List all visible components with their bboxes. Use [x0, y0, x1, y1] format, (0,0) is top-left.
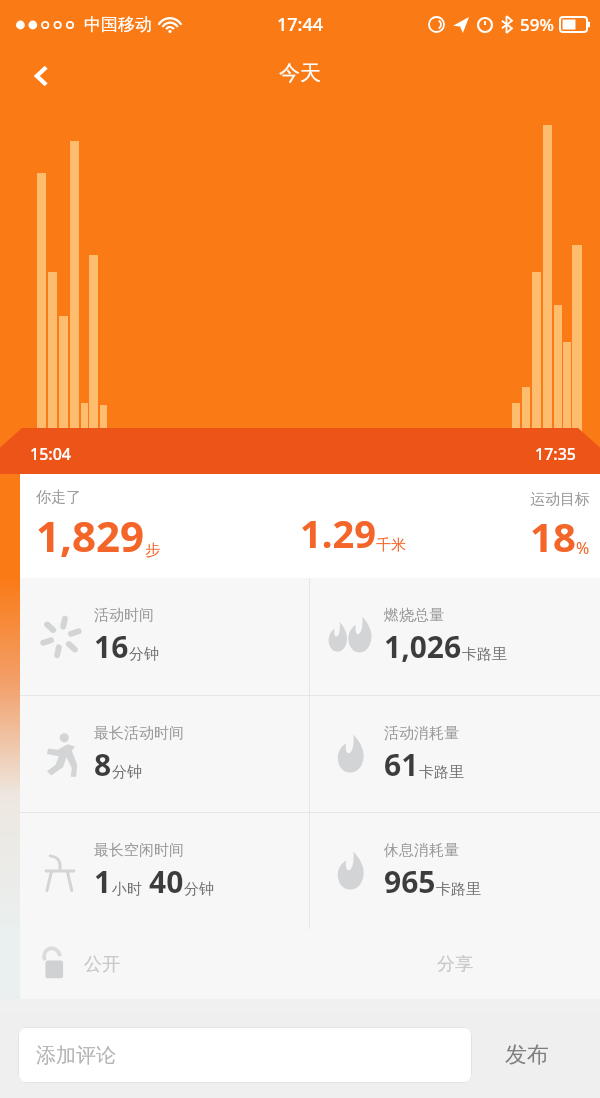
- staticText: 卡路里: [436, 880, 481, 899]
- staticText: 燃烧总量: [384, 606, 444, 625]
- staticText: 运动目标: [530, 490, 590, 509]
- staticText: 活动时间: [94, 606, 154, 625]
- staticText: 千米: [376, 536, 406, 555]
- staticText: 发布: [505, 1041, 549, 1069]
- button[interactable]: 发布: [472, 1012, 582, 1098]
- staticText: 最长空闲时间: [94, 841, 184, 860]
- staticText: 小时: [112, 880, 142, 899]
- staticText: 今天: [279, 60, 321, 86]
- staticText: 965: [384, 861, 436, 902]
- staticText: 你走了: [36, 488, 81, 507]
- staticText: 18: [530, 509, 576, 563]
- staticText: 1: [94, 861, 112, 902]
- button[interactable]: 你走了: [20, 474, 600, 578]
- button[interactable]: 活动消耗量: [310, 696, 600, 812]
- staticText: 分钟: [184, 880, 214, 899]
- button[interactable]: Back: [20, 54, 64, 98]
- staticText: 1,026: [384, 626, 462, 667]
- staticText: 61: [384, 744, 419, 785]
- button[interactable]: 分享: [310, 929, 600, 999]
- staticText: 公开: [84, 953, 120, 976]
- staticText: 1,829: [36, 507, 145, 564]
- staticText: %: [576, 537, 590, 559]
- staticText: 16: [94, 626, 129, 667]
- button[interactable]: 最长活动时间: [20, 696, 309, 812]
- staticText: 卡路里: [419, 763, 464, 782]
- staticText: 添加评论: [36, 1043, 116, 1068]
- button[interactable]: 燃烧总量: [310, 578, 600, 695]
- staticText: 59%: [520, 13, 554, 36]
- staticText: 分钟: [112, 763, 142, 782]
- staticText: 40: [149, 861, 184, 902]
- button[interactable]: 添加评论: [18, 1027, 472, 1083]
- staticText: 卡路里: [462, 645, 507, 664]
- button[interactable]: 活动时间: [20, 578, 309, 695]
- staticText: 中国移动: [84, 14, 152, 35]
- staticText: 17:35: [535, 443, 576, 465]
- staticText: 分享: [437, 953, 473, 976]
- button[interactable]: 最长空闲时间: [20, 813, 309, 929]
- staticText: 活动消耗量: [384, 724, 459, 743]
- staticText: 分钟: [129, 645, 159, 664]
- staticText: 最长活动时间: [94, 724, 184, 743]
- staticText: 休息消耗量: [384, 841, 459, 860]
- button[interactable]: 公开: [20, 929, 310, 999]
- staticText: 17:44: [277, 12, 324, 37]
- staticText: 8: [94, 744, 112, 785]
- staticText: 步: [145, 541, 160, 560]
- staticText: 15:04: [30, 443, 71, 465]
- button[interactable]: 休息消耗量: [310, 813, 600, 929]
- staticText: 1.29: [300, 507, 376, 559]
